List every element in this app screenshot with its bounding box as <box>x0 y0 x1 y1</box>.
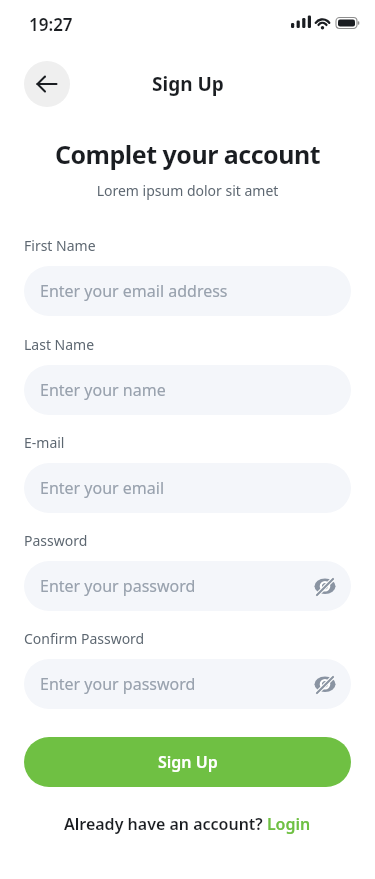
staticText: 19:27 <box>29 13 73 36</box>
staticText: Sign Up <box>158 751 218 773</box>
staticText: Enter your password <box>40 575 196 597</box>
staticText: Enter your name <box>40 379 166 401</box>
button[interactable]: Already have an account? Login <box>64 813 311 835</box>
staticText: Complet your account <box>0 137 375 171</box>
staticText: Lorem ipsum dolor sit amet <box>0 181 375 200</box>
staticText: Enter your email address <box>40 280 228 302</box>
button[interactable]: Enter your email address <box>24 266 351 316</box>
staticText: Sign Up <box>152 71 224 97</box>
staticText: Password <box>24 531 88 550</box>
staticText: Enter your email <box>40 477 165 499</box>
button[interactable]: Enter your name <box>24 365 351 415</box>
button[interactable] <box>24 61 70 107</box>
button[interactable]: Sign Up <box>24 737 351 787</box>
button[interactable]: Enter your password <box>24 561 351 611</box>
button[interactable]: Enter your password <box>24 659 351 709</box>
button[interactable]: Enter your email <box>24 463 351 513</box>
staticText: E-mail <box>24 433 65 452</box>
staticText: First Name <box>24 236 96 255</box>
staticText: Last Name <box>24 335 95 354</box>
staticText: Confirm Password <box>24 629 145 648</box>
staticText: Already have an account? Login <box>64 813 311 835</box>
staticText: Enter your password <box>40 673 196 695</box>
